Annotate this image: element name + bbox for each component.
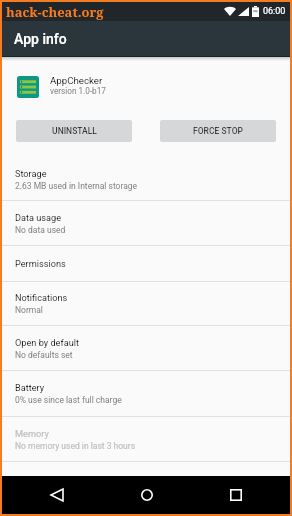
staticText: hack-cheat.org: [6, 3, 104, 21]
staticText: FORCE STOP: [193, 126, 243, 136]
staticText: No data used: [15, 225, 66, 235]
staticText: Battery: [15, 382, 45, 393]
staticText: 06:00: [263, 6, 286, 17]
staticText: Open by default: [15, 337, 79, 348]
button[interactable]: FORCE STOP: [160, 120, 276, 142]
button[interactable]: Home: [102, 476, 191, 514]
button[interactable]: Data usage: [2, 201, 290, 246]
button[interactable]: UNINSTALL: [16, 120, 132, 142]
staticText: Notifications: [15, 292, 68, 303]
button[interactable]: Notifications: [2, 282, 290, 326]
button[interactable]: Back: [12, 476, 102, 514]
staticText: No memory used in last 3 hours: [15, 441, 136, 451]
staticText: Storage: [15, 168, 47, 179]
staticText: AppChecker: [50, 75, 103, 86]
button[interactable]: Battery: [2, 371, 290, 417]
staticText: App info: [14, 31, 67, 47]
staticText: Permissions: [15, 258, 66, 269]
button[interactable]: Memory: [2, 417, 290, 462]
button[interactable]: Open by default: [2, 326, 290, 371]
staticText: Memory: [15, 428, 49, 439]
staticText: 2.63 MB used in Internal storage: [15, 181, 138, 191]
staticText: UNINSTALL: [52, 126, 97, 136]
staticText: Data usage: [15, 212, 62, 223]
staticText: No defaults set: [15, 350, 73, 360]
button[interactable]: Recent apps: [191, 476, 280, 514]
button[interactable]: Storage: [2, 158, 290, 201]
staticText: 0% use since last full charge: [15, 395, 122, 405]
button[interactable]: Permissions: [2, 246, 290, 282]
staticText: Normal: [15, 305, 43, 315]
staticText: version 1.0-b17: [50, 86, 106, 96]
